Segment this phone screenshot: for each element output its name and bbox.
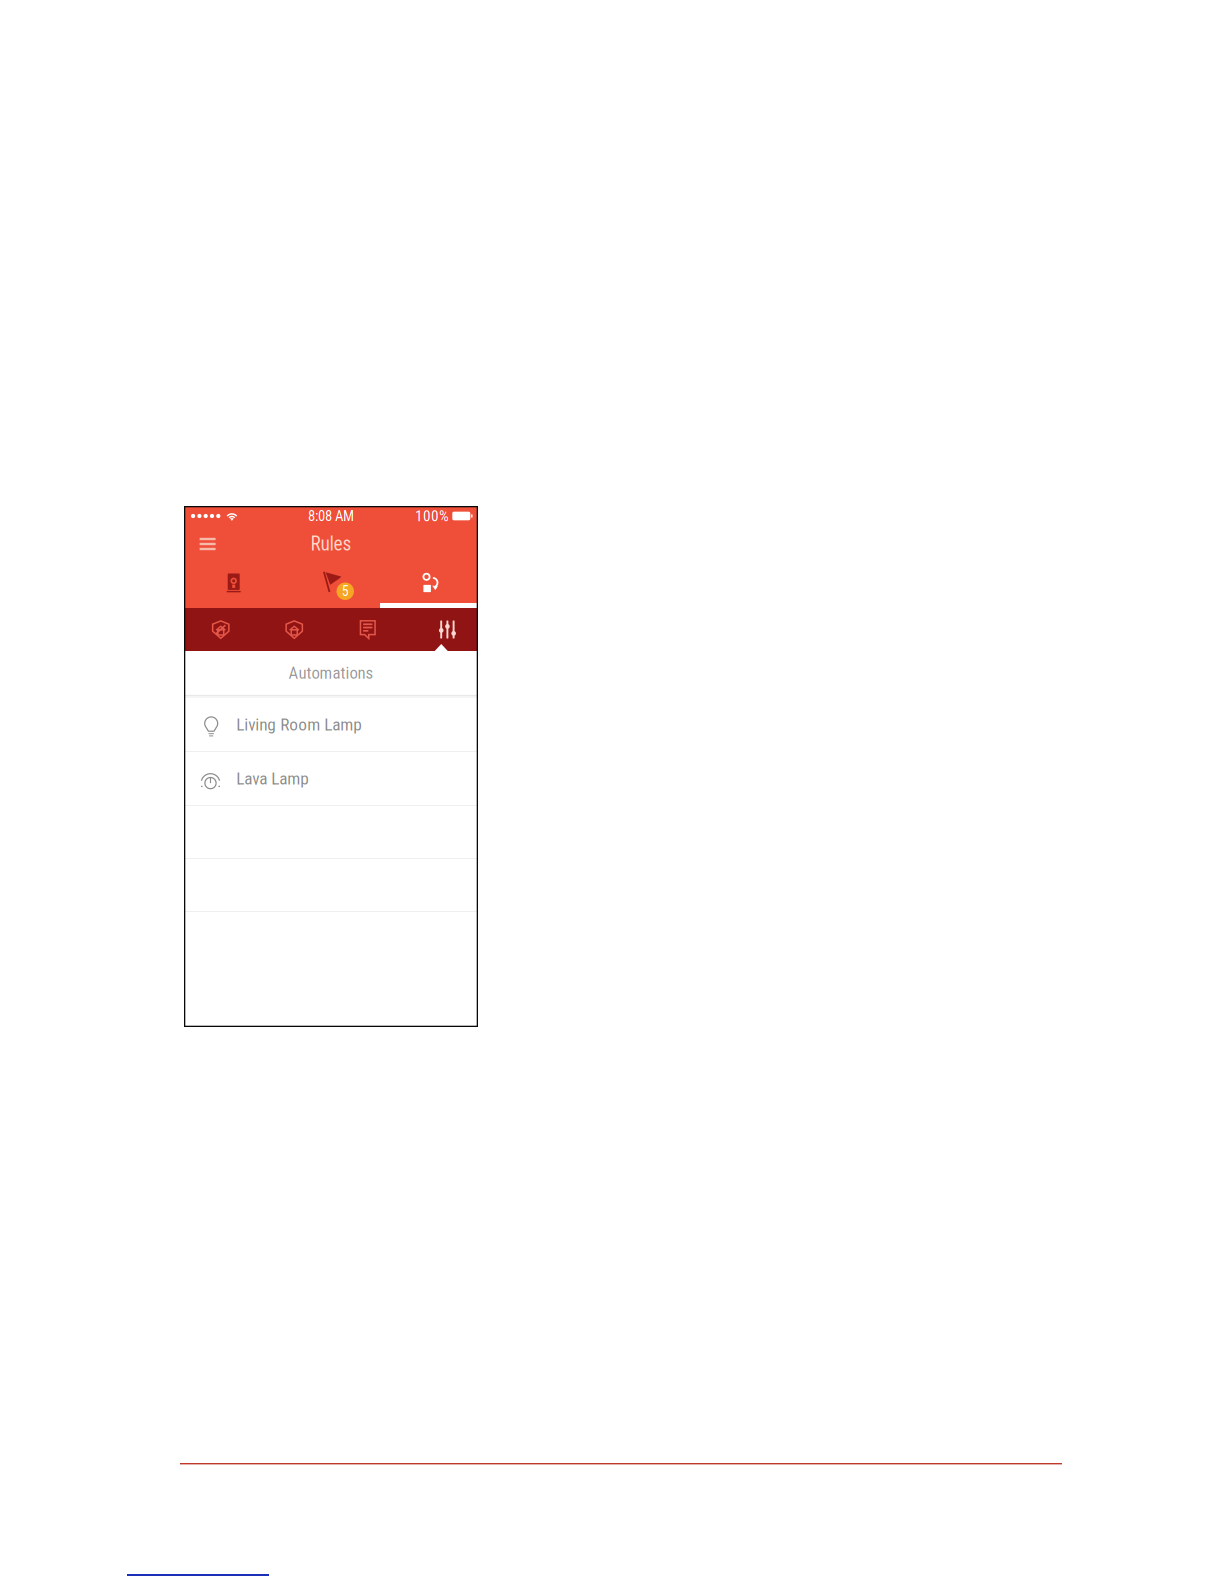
- button[interactable]: Arm: [257, 608, 331, 651]
- button[interactable]: Messages: [331, 608, 404, 651]
- button[interactable]: Doors: [184, 562, 282, 608]
- staticText: Lava Lamp: [236, 768, 309, 789]
- button[interactable]: Lava Lamp: [184, 752, 478, 805]
- staticText: 100%: [415, 507, 449, 525]
- staticText: Automations: [288, 663, 373, 683]
- staticText: 5: [342, 583, 349, 599]
- staticText: Rules: [310, 533, 351, 555]
- button[interactable]: Disarm: [184, 608, 257, 651]
- button[interactable]: Living Room Lamp: [184, 698, 478, 751]
- button[interactable]: Menu: [188, 526, 228, 562]
- button[interactable]: Settings: [404, 608, 478, 651]
- staticText: 8:08 AM: [308, 507, 354, 525]
- button[interactable]: Rules: [380, 562, 478, 608]
- button[interactable]: Alerts: [282, 562, 380, 608]
- staticText: Living Room Lamp: [236, 714, 362, 735]
